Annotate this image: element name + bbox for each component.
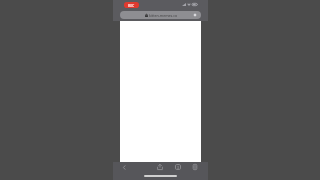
button[interactable]: Close tab	[192, 12, 198, 18]
button[interactable]: Share	[154, 162, 166, 172]
button[interactable]: Address bar	[120, 11, 201, 19]
staticText: 3	[177, 165, 179, 170]
button[interactable]: Tabs	[172, 162, 184, 172]
staticText: REC	[128, 3, 135, 8]
button[interactable]: More options	[189, 162, 201, 172]
button[interactable]: Back	[118, 162, 130, 172]
button[interactable]: Recording indicator	[124, 2, 139, 8]
staticText: kitten-memes.co	[149, 13, 178, 18]
